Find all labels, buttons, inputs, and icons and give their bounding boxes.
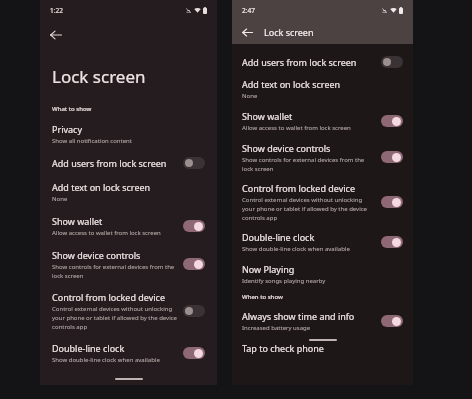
button[interactable]: Now Playing [232,258,413,290]
button[interactable]: Show device controls [232,137,413,177]
staticText: Show wallet [52,215,103,227]
staticText: Add users from lock screen [52,157,167,169]
staticText: Lock screen [264,26,314,38]
button[interactable]: Toggle [183,347,205,359]
staticText: Privacy [52,123,83,135]
staticText: Show controls for external devices from … [242,156,365,172]
button[interactable]: Show wallet [232,105,413,137]
button[interactable]: Back [238,23,256,41]
button[interactable]: Toggle [183,305,205,317]
staticText: 2:47 [242,6,255,15]
button[interactable]: Toggle [183,220,205,232]
staticText: Control from locked device [52,291,165,303]
button[interactable]: Toggle [381,151,403,163]
button[interactable]: Privacy [40,119,217,151]
staticText: Allow access to wallet from lock screen [52,229,161,237]
staticText: Double-line clock [52,342,125,354]
button[interactable]: Add text on lock screen [232,73,413,105]
button[interactable]: Add users from lock screen [232,51,413,73]
staticText: Show double-line clock when available [52,356,160,364]
staticText: Identify songs playing nearby [242,277,326,285]
staticText: Tap to check phone [242,342,324,354]
button[interactable]: Control from locked device [40,285,217,336]
button[interactable]: Toggle [381,236,403,248]
button[interactable]: Back [46,25,66,45]
staticText: Add text on lock screen [52,181,151,193]
staticText: Control from locked device [242,182,355,194]
staticText: Control external devices without unlocki… [52,305,177,330]
staticText: Increased battery usage [242,324,311,332]
staticText: Show device controls [52,249,141,261]
button[interactable]: Double-line clock [232,226,413,258]
staticText: Now Playing [242,263,295,275]
button[interactable]: Tap to check phone [232,337,413,359]
button[interactable]: Show device controls [40,243,217,285]
staticText: Show all notification content [52,137,132,145]
staticText: Show wallet [242,110,293,122]
staticText: Always show time and info [242,310,355,322]
staticText: What to show [52,105,92,113]
button[interactable]: Control from locked device [232,177,413,226]
button[interactable]: Add users from lock screen [40,151,217,175]
staticText: Double-line clock [242,231,315,243]
staticText: Show device controls [242,142,331,154]
button[interactable]: Add text on lock screen [40,175,217,209]
button[interactable]: Toggle [381,56,403,68]
button[interactable]: Toggle [381,196,403,208]
staticText: Lock screen [52,65,146,88]
staticText: When to show [242,293,283,301]
staticText: Control external devices without unlocki… [242,196,367,221]
button[interactable]: Toggle [381,115,403,127]
button[interactable]: Double-line clock [40,336,217,368]
button[interactable]: Toggle [183,157,205,169]
button[interactable]: Show wallet [40,209,217,243]
staticText: 1:22 [50,6,63,15]
staticText: Show double-line clock when available [242,245,350,253]
staticText: Allow access to wallet from lock screen [242,124,351,132]
staticText: None [52,195,68,203]
button[interactable]: Toggle [381,315,403,327]
button[interactable]: Toggle [183,258,205,270]
staticText: Add text on lock screen [242,78,341,90]
staticText: Show controls for external devices from … [52,263,175,279]
staticText: Add users from lock screen [242,56,357,68]
staticText: None [242,92,258,100]
button[interactable]: Always show time and info [232,305,413,337]
